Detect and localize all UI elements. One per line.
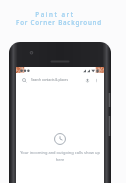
staticText: Paint art (35, 10, 75, 18)
button[interactable]: Search contacts & places (16, 74, 104, 86)
other: Voice search (85, 78, 90, 83)
staticText: Search contacts & places (31, 78, 68, 82)
staticText: Your incoming and outgoing calls show up… (20, 150, 100, 162)
staticText: For Corner Background (16, 18, 102, 26)
other: More options (94, 78, 99, 83)
